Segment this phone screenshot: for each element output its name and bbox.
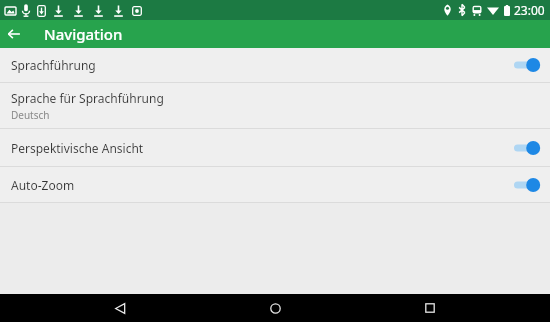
button[interactable]: Toggle Auto-Zoom	[514, 167, 550, 202]
button[interactable]: Sprache für Sprachführung	[0, 83, 550, 128]
button[interactable]: Toggle Perspektivische Ansicht	[514, 129, 550, 166]
staticText: Deutsch	[11, 108, 50, 122]
staticText: Sprache für Sprachführung	[11, 90, 164, 106]
button[interactable]: Home	[240, 294, 310, 322]
staticText: Auto-Zoom	[11, 177, 75, 193]
staticText: Navigation	[44, 24, 123, 44]
button[interactable]: Auto-Zoom	[0, 167, 550, 202]
button[interactable]: Recent apps	[395, 294, 465, 322]
button[interactable]: Sprachführung	[0, 48, 550, 82]
staticText: Perspektivische Ansicht	[11, 140, 144, 156]
staticText: Sprachführung	[11, 57, 96, 73]
button[interactable]: Back	[0, 20, 28, 48]
button[interactable]: Back	[85, 294, 155, 322]
staticText: 23:00	[514, 2, 545, 18]
button[interactable]: Perspektivische Ansicht	[0, 129, 550, 166]
button[interactable]: Toggle Sprachführung	[514, 48, 550, 82]
